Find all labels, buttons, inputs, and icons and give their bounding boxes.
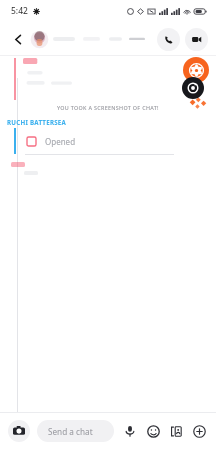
button[interactable]: Voice call: [157, 28, 180, 51]
button[interactable]: Send a chat: [37, 420, 114, 442]
button[interactable]: Emoji: [144, 422, 162, 440]
button[interactable]: Snap camera: [183, 57, 209, 83]
button[interactable]: Stickers: [167, 422, 185, 440]
staticText: Send a chat: [48, 426, 93, 437]
staticText: RUCHI BATTERSEA: [7, 118, 67, 126]
staticText: 5:42: [11, 5, 28, 17]
button[interactable]: Opened: [0, 128, 216, 154]
staticText: YOU TOOK A SCREENSHOT OF CHAT!: [57, 104, 159, 111]
button[interactable]: Video call: [185, 28, 208, 51]
button[interactable]: More options: [190, 422, 208, 440]
button[interactable]: Voice note: [121, 422, 139, 440]
button[interactable]: Camera: [8, 420, 30, 442]
staticText: Opened: [45, 136, 76, 147]
button[interactable]: Back: [8, 29, 28, 49]
button[interactable]: Open camera: [182, 77, 204, 99]
